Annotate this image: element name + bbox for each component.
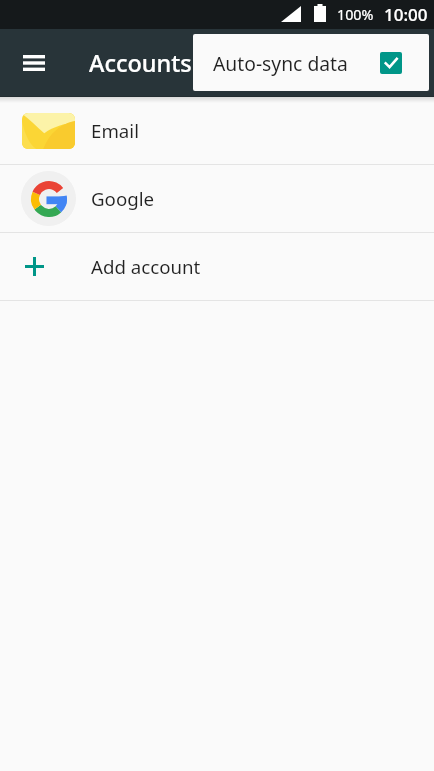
staticText: Google [91,186,155,211]
button[interactable]: Google [0,165,434,232]
staticText: Add account [91,254,201,279]
staticText: 100% [337,5,374,24]
staticText: Email [91,118,139,143]
button[interactable]: Auto-sync data [193,34,429,91]
button[interactable]: Email [0,97,434,164]
staticText: Accounts [89,47,192,79]
button[interactable]: Add account [0,233,434,300]
button[interactable]: Open navigation menu [11,41,56,86]
staticText: Auto-sync data [213,50,348,76]
staticText: 10:00 [384,3,428,26]
button[interactable]: Auto-sync data checkbox, checked [380,52,402,74]
